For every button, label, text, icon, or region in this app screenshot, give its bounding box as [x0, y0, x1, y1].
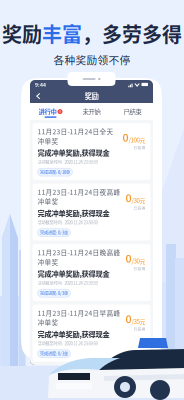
- staticText: 完成冲单奖励,获得现金: [38, 268, 110, 278]
- staticText: 0: [125, 250, 131, 266]
- staticText: 11月23日-11月24日早高峰冲单奖: [38, 308, 121, 327]
- staticText: 完成进度: 0/3单: [40, 290, 68, 296]
- button[interactable]: 返回: [34, 91, 42, 100]
- staticText: 已获得: [133, 145, 145, 150]
- staticText: 0: [122, 129, 128, 145]
- staticText: /30元: [131, 196, 145, 205]
- staticText: ，多劳多得: [82, 19, 182, 48]
- staticText: 完成进度: 0/3单: [40, 230, 68, 236]
- staticText: 活动截至时间: 2020.11.24 23:59:59: [38, 219, 98, 225]
- staticText: /35元: [131, 317, 145, 326]
- staticText: 进行中: [38, 107, 56, 116]
- staticText: 奖励: [2, 19, 42, 48]
- staticText: 11月23日-11月24日夜高峰冲单奖: [38, 187, 121, 206]
- staticText: 完成冲单奖励,获得现金: [38, 147, 110, 157]
- staticText: 未开始: [82, 107, 100, 116]
- staticText: 9:44: [35, 81, 46, 88]
- button[interactable]: 11月23日-11月24日晚高峰冲单奖: [33, 244, 150, 301]
- staticText: 活动截至时间: 2020.11.24 23:59:59: [38, 340, 98, 346]
- staticText: 9: [59, 109, 61, 114]
- staticText: 已获得: [133, 326, 145, 332]
- button[interactable]: 11月23日-11月24日夜高峰冲单奖: [33, 183, 150, 241]
- staticText: 已结束: [123, 107, 141, 116]
- staticText: 奖励: [84, 91, 98, 101]
- staticText: /30元: [131, 256, 145, 265]
- staticText: 11月23日-11月24日晚高峰冲单奖: [38, 247, 121, 267]
- staticText: /100元: [128, 135, 145, 144]
- staticText: 活动截至时间: 2020.11.24 23:59:59: [38, 159, 98, 165]
- button[interactable]: 未开始: [71, 103, 112, 120]
- staticText: 0: [125, 311, 131, 326]
- staticText: 丰富: [42, 19, 82, 48]
- staticText: 活动截至时间: 2020.11.24 23:59:59: [38, 280, 98, 286]
- button[interactable]: 11月23日-11月24日早高峰冲单奖: [33, 304, 150, 362]
- button[interactable]: 进行中: [30, 103, 71, 120]
- staticText: 已获得: [133, 266, 145, 271]
- staticText: 各种奖励领不停: [53, 52, 130, 67]
- staticText: 完成冲单奖励,获得现金: [38, 329, 110, 339]
- staticText: 0: [125, 190, 131, 205]
- staticText: 已获得: [133, 205, 145, 211]
- staticText: 完成进度: 0/3单: [40, 351, 68, 357]
- staticText: 完成进度: 0/10单: [40, 169, 70, 175]
- button[interactable]: 11月23日-11月24日全天冲单奖: [33, 123, 150, 180]
- staticText: 完成冲单奖励,获得现金: [38, 208, 110, 218]
- staticText: 11月23日-11月24日全天冲单奖: [38, 126, 114, 146]
- button[interactable]: 已结束: [112, 103, 153, 120]
